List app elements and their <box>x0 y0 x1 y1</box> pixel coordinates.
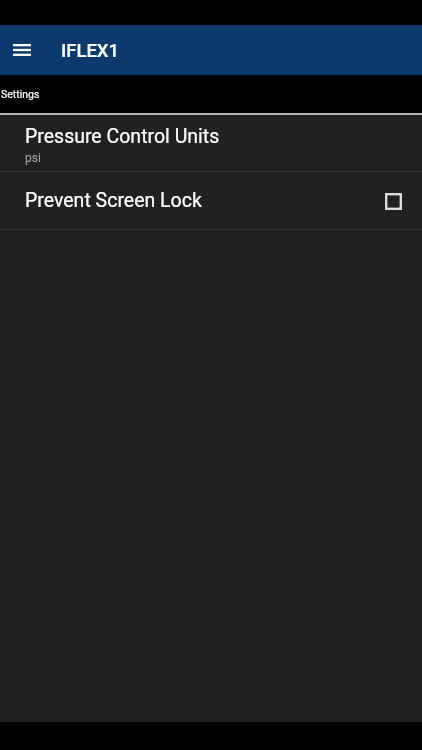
other: Prevent Screen Lock checkbox <box>382 190 404 212</box>
staticText: Settings <box>1 88 40 100</box>
button[interactable]: Pressure Control Units <box>0 115 422 171</box>
button[interactable]: Prevent Screen Lock <box>0 172 422 229</box>
staticText: IFLEX1 <box>61 40 120 62</box>
button[interactable]: Open navigation drawer <box>0 25 44 75</box>
staticText: psi <box>25 151 41 165</box>
staticText: Pressure Control Units <box>25 125 220 148</box>
staticText: Prevent Screen Lock <box>25 189 382 212</box>
